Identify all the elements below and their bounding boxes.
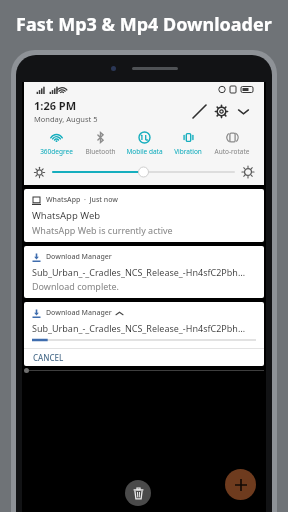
staticText: WhatsApp Web <box>32 209 101 222</box>
button[interactable]: Download Manager <box>24 246 264 298</box>
button[interactable]: Delete <box>125 480 151 506</box>
staticText: CANCEL <box>33 352 64 363</box>
staticText: Auto-rotate <box>214 147 250 156</box>
staticText: WhatsApp Web is currently active <box>32 224 173 236</box>
staticText: Download Manager <box>46 252 112 262</box>
staticText: Sub_Urban_-_Cradles_NCS_Release_-Hn4sfC2… <box>32 322 246 334</box>
button[interactable]: Bluetooth <box>78 130 122 157</box>
button[interactable]: Download Manager <box>24 302 264 366</box>
staticText: Bluetooth <box>85 147 116 156</box>
staticText: 1:26 PM <box>34 98 77 113</box>
button[interactable]: Add download <box>225 469 256 500</box>
button[interactable]: CANCEL <box>24 349 264 366</box>
staticText: 360degree <box>40 147 73 156</box>
staticText: Vibration <box>174 147 202 156</box>
staticText: Mobile data <box>126 147 163 156</box>
button[interactable]: WhatsApp · Just now <box>24 189 264 242</box>
staticText: WhatsApp · Just now <box>46 195 119 205</box>
staticText: Download Manager <box>46 308 112 318</box>
button[interactable]: Vibration <box>166 130 210 157</box>
button[interactable]: 360degree <box>34 130 78 157</box>
button[interactable]: Edit <box>188 100 210 122</box>
button[interactable]: Auto-rotate <box>210 130 254 157</box>
staticText: Sub_Urban_-_Cradles_NCS_Release_-Hn4sfC2… <box>32 266 246 278</box>
staticText: Fast Mp3 & Mp4 Downloader <box>16 12 272 37</box>
button[interactable]: Expand <box>232 100 254 122</box>
staticText: Monday, August 5 <box>34 114 98 124</box>
staticText: Download complete. <box>32 280 120 292</box>
button[interactable]: Mobile data <box>122 130 166 157</box>
button[interactable]: Settings <box>210 100 232 122</box>
